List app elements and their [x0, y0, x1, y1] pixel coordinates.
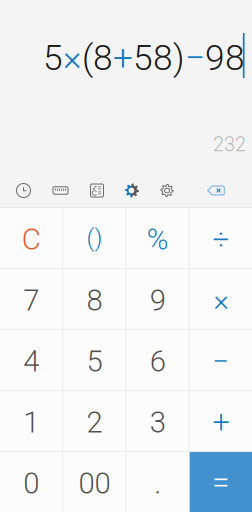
staticText: 9	[150, 283, 166, 318]
button[interactable]: Scientific calculator	[79, 173, 115, 207]
button[interactable]: Theme	[115, 173, 149, 207]
staticText: +	[113, 37, 133, 79]
staticText: 2	[86, 405, 102, 440]
staticText: 1	[23, 405, 39, 440]
button[interactable]: ÷	[190, 208, 252, 268]
button[interactable]: 1	[0, 391, 62, 451]
button[interactable]: C	[0, 208, 62, 268]
staticText: 232	[213, 133, 246, 156]
staticText: 58)	[133, 37, 185, 79]
staticText: %	[147, 222, 169, 257]
button[interactable]: %	[126, 208, 189, 268]
staticText: ÷	[212, 222, 229, 257]
button[interactable]: 00	[63, 452, 125, 512]
button[interactable]: −	[190, 330, 252, 390]
staticText: 98	[205, 37, 245, 79]
button[interactable]: 5	[63, 330, 125, 390]
staticText: ×	[213, 283, 228, 318]
button[interactable]: ()	[63, 208, 125, 268]
staticText: 8	[86, 283, 102, 318]
staticText: 00	[78, 466, 110, 501]
staticText: 5	[86, 344, 102, 379]
button[interactable]: 3	[126, 391, 189, 451]
staticText: 0	[23, 466, 39, 501]
button[interactable]: 0	[0, 452, 62, 512]
staticText: =	[212, 463, 230, 500]
staticText: 4	[23, 344, 39, 379]
staticText: −	[212, 344, 229, 379]
staticText: 5	[43, 37, 63, 79]
staticText: 6	[150, 344, 166, 379]
button[interactable]: Delete	[196, 173, 236, 207]
button[interactable]: +	[190, 391, 252, 451]
button[interactable]: 4	[0, 330, 62, 390]
button[interactable]: 9	[126, 269, 189, 329]
staticText: ()	[86, 224, 102, 252]
staticText: .	[154, 466, 161, 501]
staticText: 7	[23, 283, 39, 318]
staticText: +	[212, 404, 229, 440]
button[interactable]: 7	[0, 269, 62, 329]
staticText: (8	[82, 37, 113, 79]
button[interactable]: 8	[63, 269, 125, 329]
button[interactable]: .	[126, 452, 189, 512]
staticText: C	[22, 222, 41, 257]
staticText: ×	[63, 37, 82, 79]
staticText: 3	[150, 405, 166, 440]
button[interactable]: History	[5, 173, 42, 207]
staticText: −	[185, 37, 205, 79]
button[interactable]: ×	[190, 269, 252, 329]
button[interactable]: 6	[126, 330, 189, 390]
button[interactable]: 2	[63, 391, 125, 451]
button[interactable]: Unit converter	[42, 173, 79, 207]
button[interactable]: =	[190, 452, 252, 512]
button[interactable]: Settings	[149, 173, 185, 207]
